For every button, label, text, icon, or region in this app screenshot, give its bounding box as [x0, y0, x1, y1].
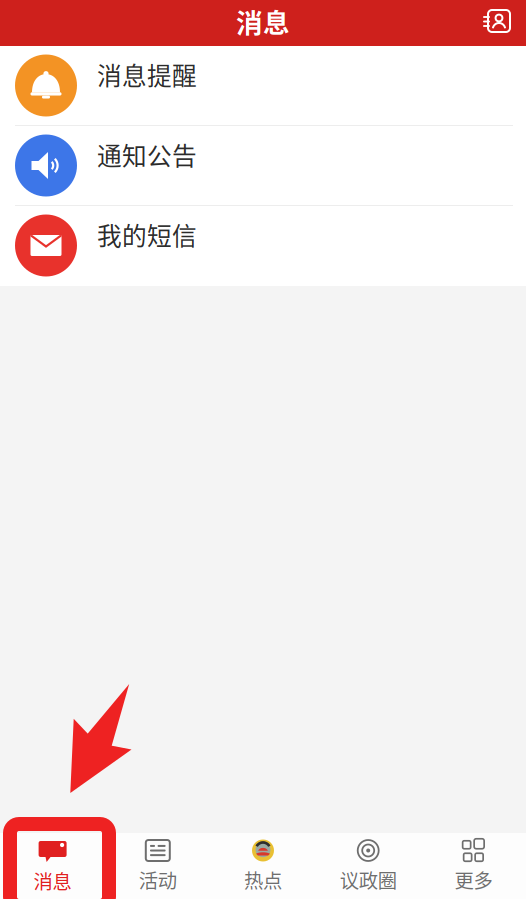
staticText: 消息 — [236, 2, 290, 40]
button[interactable]: 我的短信 — [0, 206, 526, 286]
button[interactable]: 通知公告 — [0, 126, 526, 206]
button[interactable]: 消息 — [0, 833, 105, 899]
staticText: 通知公告 — [97, 137, 197, 172]
staticText: 活动 — [139, 865, 177, 893]
staticText: 热点 — [244, 865, 282, 893]
staticText: 消息提醒 — [97, 57, 197, 92]
button[interactable]: 热点 — [210, 833, 316, 899]
staticText: 议政圈 — [340, 865, 397, 893]
button[interactable]: 更多 — [421, 833, 526, 899]
button[interactable]: 议政圈 — [316, 833, 421, 899]
staticText: 更多 — [454, 865, 492, 893]
staticText: 消息 — [34, 866, 72, 894]
button[interactable]: 活动 — [105, 833, 210, 899]
staticText: 我的短信 — [97, 217, 197, 252]
button[interactable]: 通讯录 — [474, 1, 518, 45]
button[interactable]: 消息提醒 — [0, 46, 526, 126]
